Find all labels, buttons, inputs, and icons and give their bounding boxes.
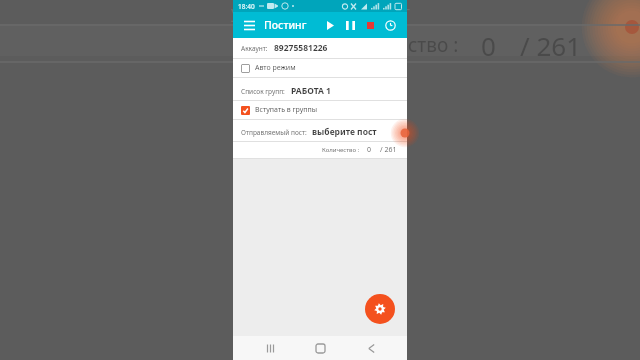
staticText: Отправляемый пост: xyxy=(241,128,307,137)
staticText: выберите пост xyxy=(312,126,377,138)
button[interactable]: Settings xyxy=(365,294,395,324)
staticText: Список групп: xyxy=(241,87,285,96)
staticText: 18:40 xyxy=(238,2,255,11)
staticText: / 261 xyxy=(520,28,582,62)
staticText: 89275581226 xyxy=(274,42,328,54)
button[interactable]: History xyxy=(380,15,400,35)
staticText: Постинг xyxy=(264,18,307,32)
button[interactable]: Pause xyxy=(340,15,360,35)
button[interactable]: Home xyxy=(306,336,334,360)
staticText: Вступать в группы xyxy=(255,105,318,115)
button[interactable]: Stop xyxy=(360,15,380,35)
staticText: РАБОТА 1 xyxy=(291,85,331,97)
staticText: / 261 xyxy=(380,145,397,155)
button[interactable]: Play xyxy=(320,15,340,35)
staticText: Аккаунт: xyxy=(241,44,268,53)
staticText: Авто режим xyxy=(255,63,296,73)
staticText: Количество : xyxy=(322,146,360,154)
button[interactable]: Вступать в группы xyxy=(233,101,407,119)
staticText: ство : xyxy=(408,32,459,58)
button[interactable]: Аккаунт: xyxy=(233,38,407,58)
button[interactable]: Recents xyxy=(256,336,284,360)
staticText: 0 xyxy=(481,28,496,62)
button[interactable]: Back xyxy=(357,336,385,360)
staticText: управлением … пост xyxy=(231,0,410,22)
staticText: 0 xyxy=(367,145,372,155)
button[interactable]: Menu xyxy=(240,16,258,34)
button[interactable]: Отправляемый пост: xyxy=(233,123,407,141)
button[interactable]: Авто режим xyxy=(233,59,407,77)
button[interactable]: Список групп: xyxy=(233,82,407,100)
